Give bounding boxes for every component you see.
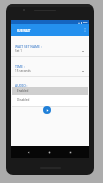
staticText: Disabled <box>17 98 30 102</box>
button[interactable]: Home <box>46 149 52 155</box>
button[interactable]: Back <box>25 149 31 155</box>
button[interactable]: Disabled <box>12 95 88 104</box>
button[interactable]: TIME : <box>11 57 89 77</box>
staticText: Set 1 <box>15 49 22 53</box>
button[interactable]: WAIT SET NAME : <box>11 36 89 57</box>
staticText: TIME : <box>15 64 25 68</box>
staticText: WAIT SET NAME : <box>15 44 42 48</box>
staticText: SUB WAIT <box>17 29 31 33</box>
button[interactable]: More options <box>81 24 89 36</box>
button[interactable]: Start <box>43 106 51 114</box>
button[interactable]: Recent apps <box>67 149 73 155</box>
staticText: Enabled <box>17 89 29 93</box>
staticText: 8:00 <box>83 21 88 24</box>
button[interactable]: Enabled <box>12 87 88 95</box>
staticText: 15 seconds <box>15 69 31 73</box>
staticText: AUDIO : <box>15 83 28 87</box>
